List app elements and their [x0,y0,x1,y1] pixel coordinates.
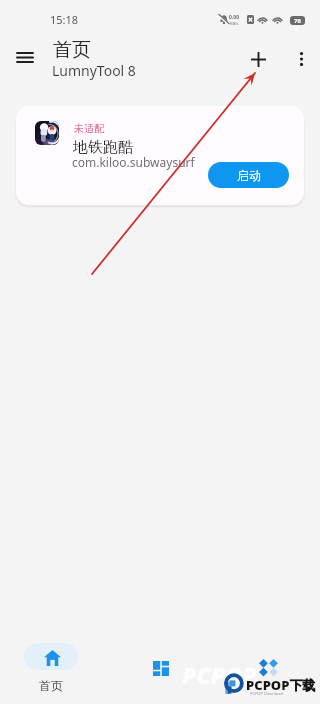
button[interactable]: Add [238,39,278,79]
button[interactable]: More options [281,39,320,79]
staticText: 76 [294,17,301,25]
button[interactable]: 启动 [208,162,289,188]
staticText: PCPOP [182,659,257,690]
button[interactable]: 首页 [0,643,104,693]
staticText: PCPOP Download [250,691,283,696]
staticText: 未适配 [74,122,104,135]
staticText: com.kiloo.subwaysurf [72,154,195,170]
staticText: 启动 [237,168,261,183]
button[interactable]: Tools [215,654,320,681]
staticText: LumnyTool 8 [52,61,136,80]
staticText: 15:18 [50,12,79,27]
staticText: KB/s [230,21,239,26]
staticText: 首页 [53,38,91,62]
button[interactable]: 未适配 [16,106,304,205]
button[interactable]: Apps [107,655,214,682]
button[interactable]: Menu [5,37,45,77]
staticText: 首页 [39,678,63,693]
staticText: 0.00 [229,14,239,21]
staticText: 地铁跑酷 [73,138,133,157]
staticText: PCPOP下载 [246,676,316,694]
